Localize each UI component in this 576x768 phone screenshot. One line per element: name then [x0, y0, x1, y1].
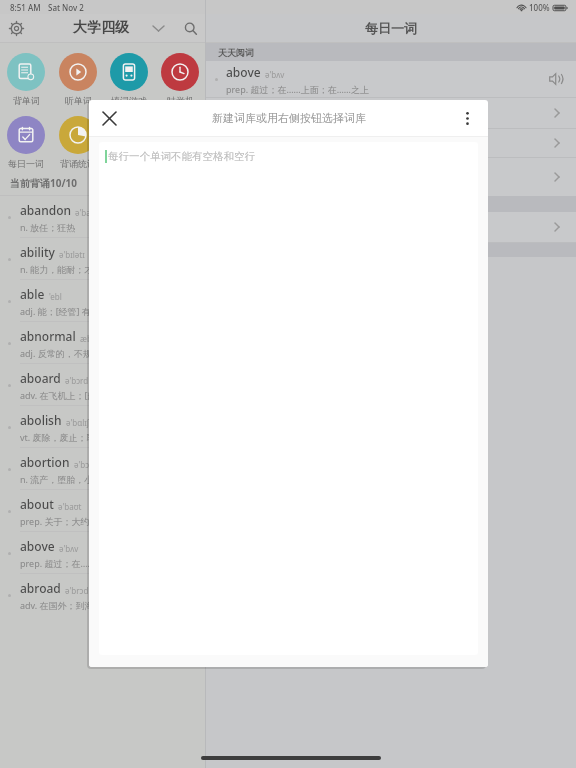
staticText: 背单词 — [13, 95, 40, 106]
button[interactable]: 大学四级 — [73, 19, 129, 37]
button[interactable]: able — [0, 280, 205, 322]
staticText: ə'bɔrʃən — [74, 459, 104, 470]
staticText: above — [20, 538, 55, 554]
staticText: 新建词库或用右侧按钮选择词库 — [212, 111, 366, 125]
staticText: æb'nɔ — [80, 333, 103, 344]
button[interactable]: More options — [454, 105, 480, 131]
staticText: abroad — [20, 580, 61, 596]
button[interactable]: 时举机 — [161, 51, 199, 108]
staticText: abnormal — [20, 328, 76, 344]
button[interactable]: Open — [206, 98, 576, 128]
button[interactable]: Settings — [5, 17, 27, 39]
staticText: abandon — [20, 202, 71, 218]
button[interactable]: aboard — [0, 364, 205, 406]
button[interactable]: above — [0, 532, 205, 574]
staticText: 每日一词 — [365, 20, 417, 36]
staticText: n. 放任；狂热 — [20, 221, 76, 233]
staticText: 当前背诵10/10 — [10, 176, 78, 190]
staticText: above — [226, 64, 261, 80]
staticText: 'ebl — [49, 291, 62, 302]
staticText: adv. 在飞机上；[船 — [20, 389, 97, 401]
staticText: n. 流产，堕胎，小 — [20, 473, 94, 485]
staticText: abortion — [20, 454, 70, 470]
staticText: 听单词 — [65, 95, 92, 106]
staticText: ability — [20, 244, 55, 260]
other: Open — [548, 104, 566, 122]
staticText: aboard — [20, 370, 61, 386]
button[interactable]: ability — [0, 238, 205, 280]
staticText: 天天阅词 — [218, 47, 254, 58]
button[interactable]: Open — [206, 129, 576, 157]
button[interactable]: Close — [95, 104, 123, 132]
button[interactable]: Expand — [147, 17, 169, 39]
staticText: ə'bʌv — [265, 69, 285, 80]
staticText: able — [20, 286, 45, 302]
button[interactable]: 背单词 — [7, 51, 45, 108]
button[interactable]: 每日一词 — [7, 114, 45, 171]
button[interactable]: abroad — [0, 574, 205, 616]
staticText: ə'brɔd — [65, 585, 89, 596]
staticText: n. 能力，能耐；才 — [20, 263, 94, 275]
button[interactable]: Open — [206, 158, 576, 196]
staticText: prep. 关于；大约 — [20, 515, 90, 527]
staticText: adv. 在国外；到海 — [20, 599, 94, 611]
staticText: Sat Nov 2 — [48, 2, 84, 13]
staticText: about — [20, 496, 54, 512]
other: Open — [548, 218, 566, 236]
staticText: 时举机 — [167, 95, 194, 106]
button[interactable]: above — [206, 61, 576, 97]
button[interactable]: abnormal — [0, 322, 205, 364]
staticText: 大学四级 — [73, 19, 129, 37]
staticText: ə'bænd — [75, 207, 104, 218]
staticText: ə'bɔrd — [65, 375, 89, 386]
staticText: 100% — [529, 2, 550, 13]
staticText: adj. 能；[经管] 有 — [20, 305, 91, 317]
button[interactable]: 听单词 — [59, 51, 97, 108]
staticText: 填词游戏 — [111, 95, 147, 106]
button[interactable]: Open — [206, 212, 576, 242]
staticText: prep. 超过；在……上面；在……之上 — [226, 83, 369, 95]
staticText: 每日一词 — [8, 158, 44, 169]
button[interactable]: 背诵统计 — [59, 114, 97, 171]
staticText: prep. 超过；在…… — [20, 557, 95, 569]
staticText: 8:51 AM — [10, 2, 41, 13]
other: Open — [548, 168, 566, 186]
staticText: ə'baʊt — [58, 501, 82, 512]
staticText: abolish — [20, 412, 62, 428]
staticText: vt. 废除，废止；取 — [20, 431, 96, 443]
button[interactable]: 填词游戏 — [110, 51, 148, 108]
button[interactable]: Search — [179, 17, 201, 39]
other: Open — [548, 134, 566, 152]
button[interactable]: Play pronunciation — [544, 67, 568, 91]
staticText: 背诵统计 — [60, 158, 96, 169]
button[interactable]: abortion — [0, 448, 205, 490]
button[interactable]: abandon — [0, 196, 205, 238]
button[interactable]: about — [0, 490, 205, 532]
staticText: 每行一个单词不能有空格和空行 — [108, 150, 255, 163]
staticText: adj. 反常的，不规 — [20, 347, 92, 359]
staticText: ə'bʌv — [59, 543, 79, 554]
staticText: ə'bɪlətɪ — [59, 249, 85, 260]
staticText: ə'bɑlɪʃ — [66, 417, 89, 428]
button[interactable]: abolish — [0, 406, 205, 448]
